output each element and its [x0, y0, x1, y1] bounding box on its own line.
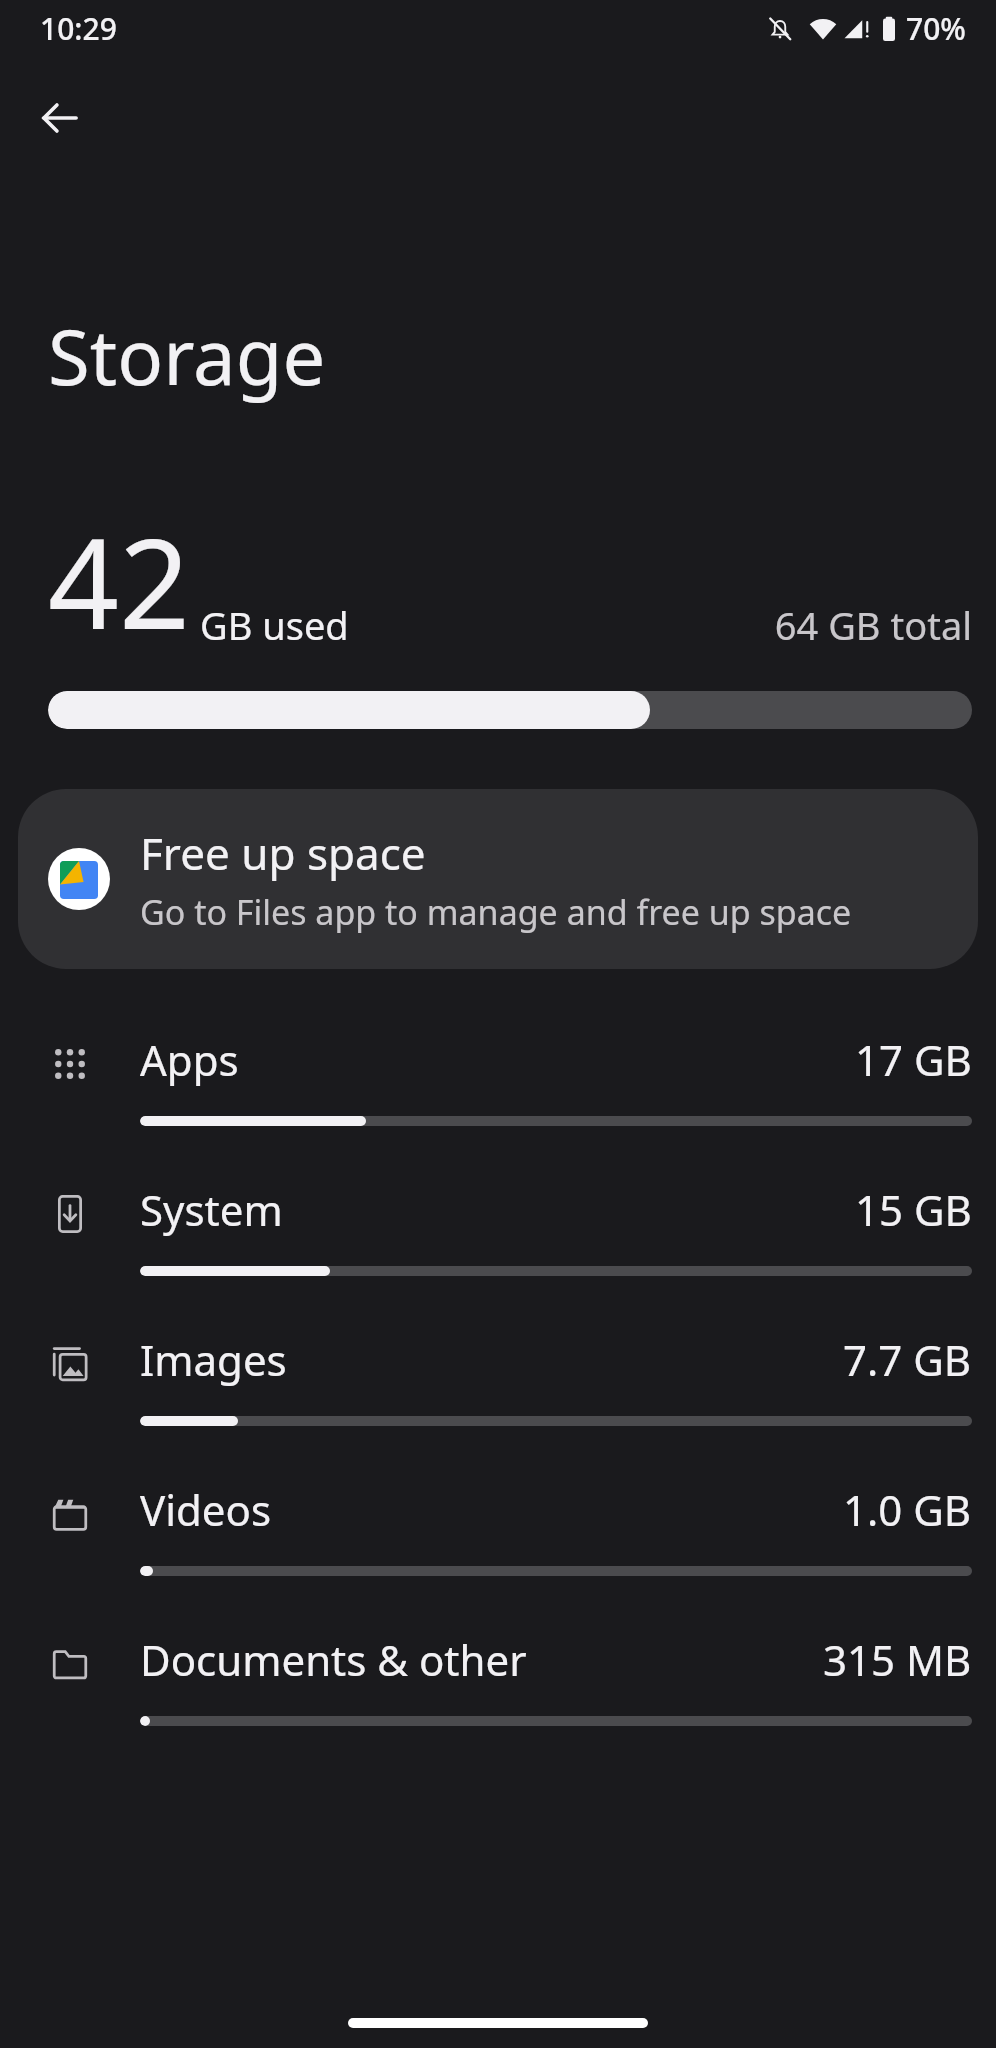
- staticText: 10:29: [40, 8, 117, 49]
- staticText: 64 GB total: [774, 599, 972, 651]
- other: Images: [48, 1342, 92, 1386]
- staticText: Videos: [140, 1481, 843, 1538]
- staticText: 17 GB: [855, 1031, 972, 1088]
- button[interactable]: System: [0, 1153, 996, 1303]
- other: Apps: [48, 1042, 92, 1086]
- button[interactable]: Free up space: [18, 789, 978, 969]
- button[interactable]: Apps: [0, 1003, 996, 1153]
- staticText: System: [140, 1181, 855, 1238]
- other: System: [48, 1192, 92, 1236]
- button[interactable]: Videos: [0, 1453, 996, 1603]
- staticText: 1.0 GB: [843, 1481, 972, 1538]
- staticText: 7.7 GB: [843, 1331, 972, 1388]
- button[interactable]: Images: [0, 1303, 996, 1453]
- staticText: Free up space: [140, 823, 426, 883]
- staticText: Images: [140, 1331, 843, 1388]
- staticText: Go to Files app to manage and free up sp…: [140, 889, 852, 935]
- button[interactable]: Back: [12, 70, 108, 166]
- staticText: 42: [48, 496, 190, 665]
- staticText: 15 GB: [855, 1181, 972, 1238]
- other: Documents and other: [48, 1642, 92, 1686]
- staticText: Apps: [140, 1031, 855, 1088]
- staticText: Storage: [48, 304, 326, 408]
- other: Videos: [48, 1492, 92, 1536]
- staticText: 70%: [906, 8, 966, 49]
- staticText: GB used: [200, 599, 774, 651]
- staticText: Documents & other: [140, 1631, 823, 1688]
- staticText: 315 MB: [823, 1631, 972, 1688]
- button[interactable]: Documents and other: [0, 1603, 996, 1753]
